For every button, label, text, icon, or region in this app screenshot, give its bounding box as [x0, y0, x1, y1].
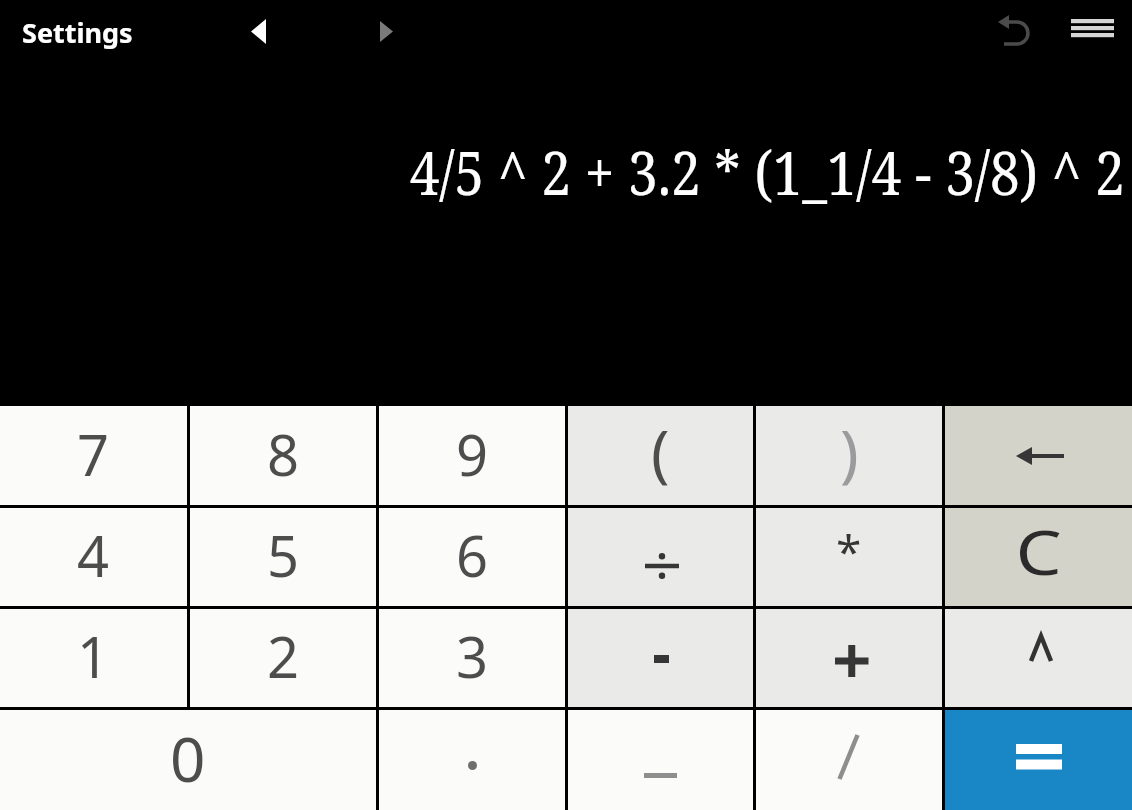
button[interactable]: 6	[379, 508, 565, 606]
staticText: 8	[267, 416, 300, 492]
button[interactable]: 4	[0, 508, 187, 606]
button[interactable]	[945, 609, 1132, 707]
button[interactable]: 9	[379, 406, 565, 505]
button[interactable]	[248, 16, 272, 48]
button[interactable]: 2	[190, 609, 376, 707]
button[interactable]	[756, 609, 942, 707]
button[interactable]	[568, 609, 753, 707]
button[interactable]: 1	[0, 609, 187, 707]
button[interactable]: Settings	[22, 14, 133, 51]
button[interactable]: )	[756, 406, 942, 505]
button[interactable]: 0	[0, 710, 376, 810]
staticText: 3	[456, 618, 489, 694]
button[interactable]	[756, 710, 942, 810]
button[interactable]	[945, 710, 1132, 810]
staticText: *	[836, 520, 862, 583]
button[interactable]	[1071, 19, 1115, 39]
button[interactable]: (	[568, 406, 753, 505]
staticText: 2	[267, 618, 300, 694]
staticText: 1	[77, 618, 110, 694]
button[interactable]	[945, 406, 1132, 505]
staticText: C	[1015, 509, 1063, 593]
staticText: 4/5 ^ 2 + 3.2 * (1_1/4 - 3/8) ^ 2	[410, 130, 1125, 213]
button[interactable]: C	[945, 508, 1132, 606]
button[interactable]: 5	[190, 508, 376, 606]
button[interactable]	[994, 12, 1032, 48]
staticText: )	[840, 409, 859, 493]
staticText: 9	[456, 416, 489, 492]
staticText: (	[651, 409, 670, 493]
button[interactable]	[568, 508, 753, 606]
button[interactable]: 7	[0, 406, 187, 505]
staticText: 4	[77, 517, 110, 593]
button[interactable]: *	[756, 508, 942, 606]
button[interactable]: 3	[379, 609, 565, 707]
button[interactable]	[376, 16, 400, 48]
staticText: 0	[170, 716, 206, 800]
button[interactable]	[379, 710, 565, 810]
staticText: 7	[77, 416, 110, 492]
staticText: 5	[267, 517, 300, 593]
button[interactable]: 8	[190, 406, 376, 505]
button[interactable]	[568, 710, 753, 810]
staticText: 6	[456, 517, 489, 593]
